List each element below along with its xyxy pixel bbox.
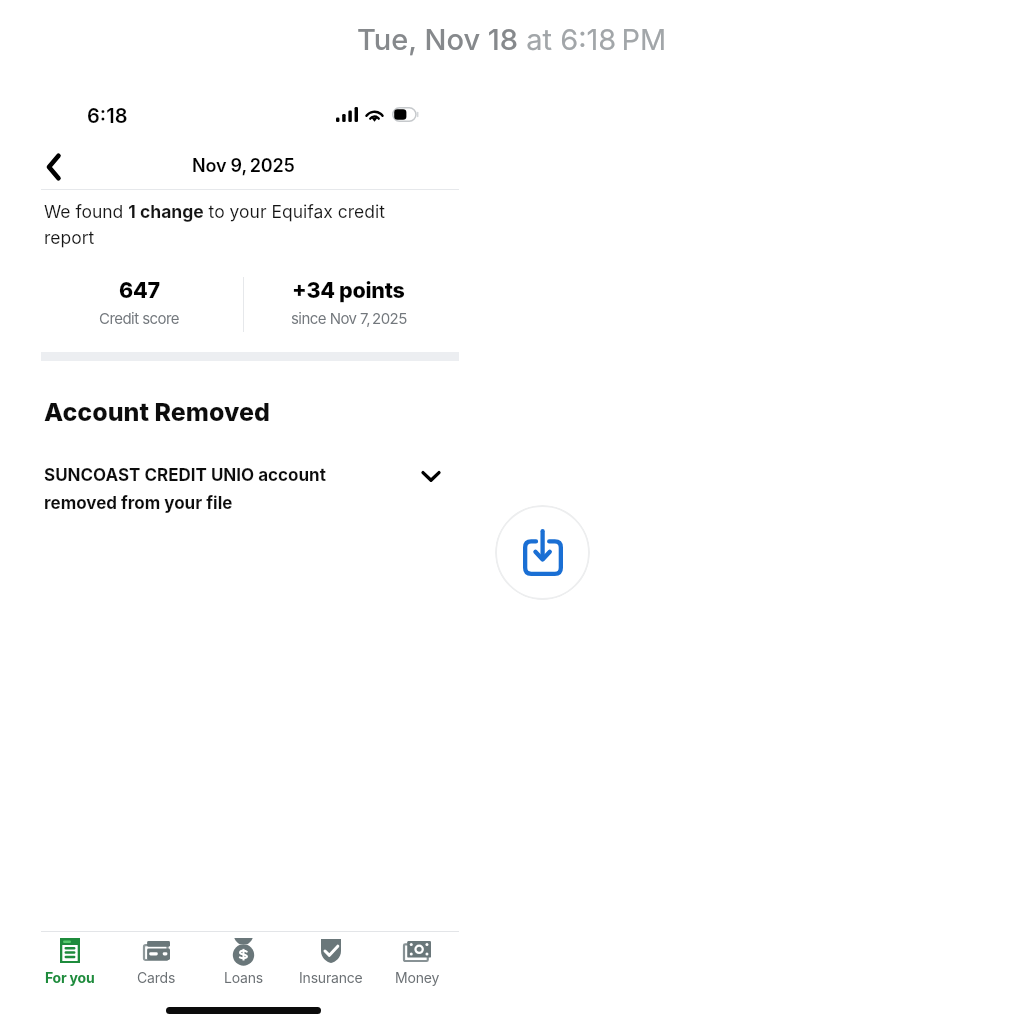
staticText: 647: [119, 277, 160, 303]
button[interactable]: Back: [32, 145, 76, 188]
button[interactable]: Loans: [200, 932, 287, 992]
button[interactable]: Money: [374, 932, 461, 992]
button[interactable]: For you: [26, 932, 113, 992]
staticText: 6:18: [87, 104, 128, 128]
staticText: Credit score: [99, 309, 180, 327]
button[interactable]: Insurance: [287, 932, 374, 992]
staticText: Insurance: [299, 969, 363, 986]
staticText: We found 1 change to your Equifax credit…: [44, 201, 429, 248]
button[interactable]: Cards: [113, 932, 200, 992]
staticText: +34 points: [292, 277, 405, 303]
staticText: Nov 9, 2025: [192, 155, 295, 177]
staticText: Account Removed: [44, 397, 270, 427]
staticText: SUNCOAST CREDIT UNIO account removed fro…: [44, 465, 346, 514]
staticText: Cards: [137, 969, 176, 986]
staticText: since Nov 7, 2025: [291, 309, 407, 327]
staticText: For you: [45, 969, 95, 986]
staticText: Loans: [224, 969, 263, 986]
staticText: Money: [395, 969, 440, 986]
staticText: Tue, Nov 18 at 6:18 PM: [357, 22, 667, 57]
button[interactable]: Download report: [495, 505, 590, 600]
button[interactable]: SUNCOAST CREDIT UNIO account removed fro…: [41, 465, 459, 514]
